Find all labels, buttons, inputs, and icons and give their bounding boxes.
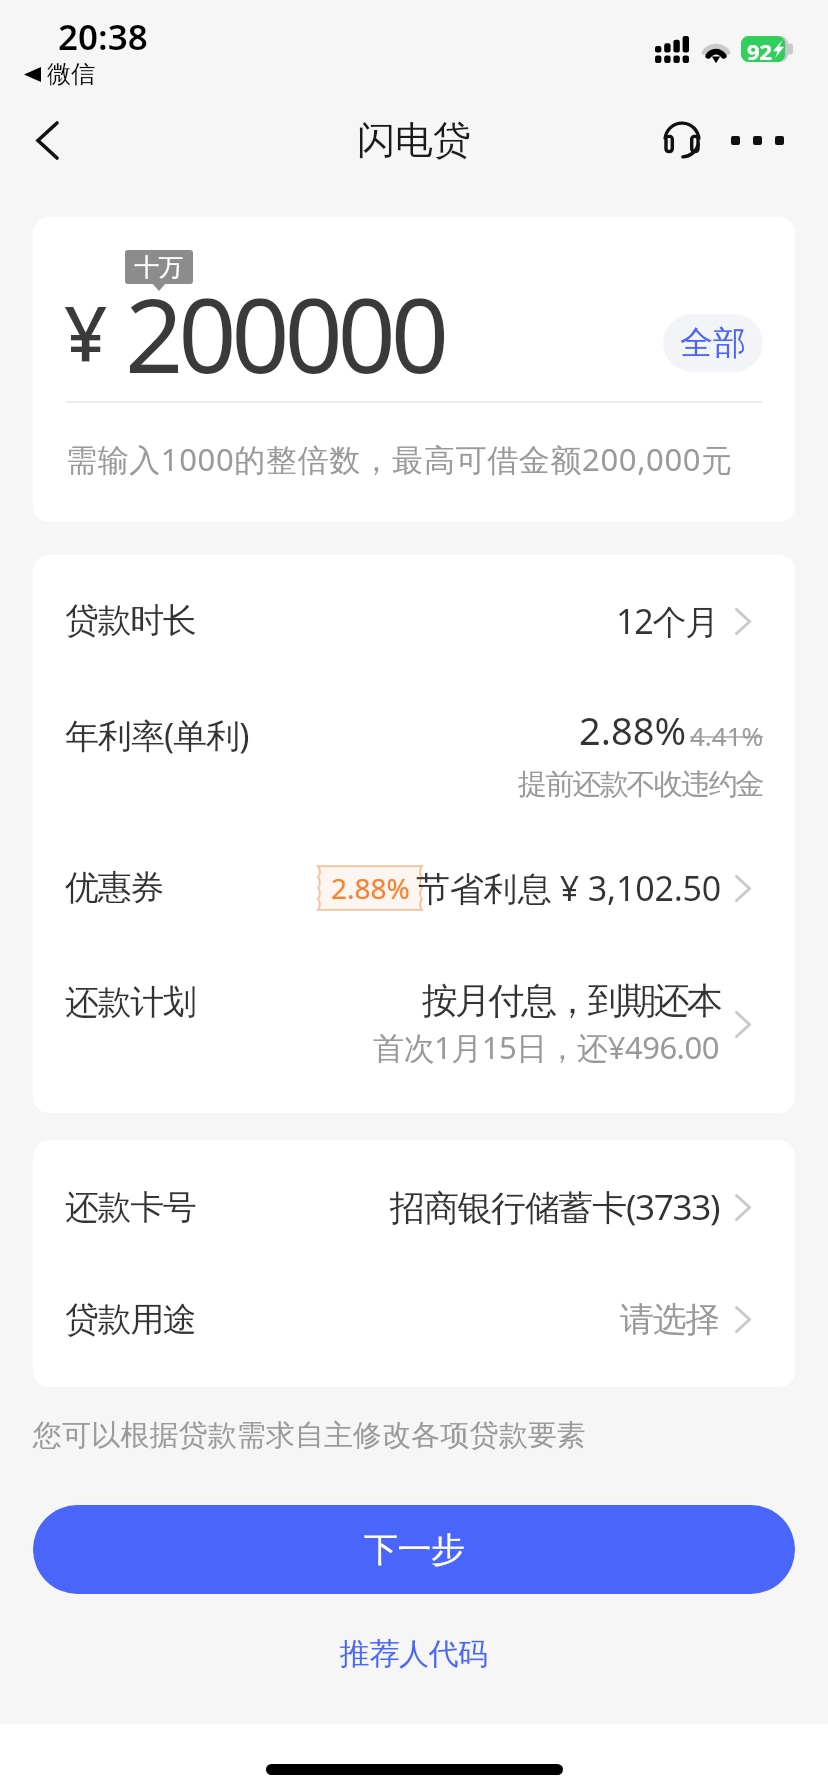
staticText: 20:38 — [58, 13, 148, 61]
staticText: 闪电贷 — [357, 116, 471, 164]
staticText: 年利率(单利) — [65, 712, 249, 758]
staticText: 12个月 — [616, 598, 719, 644]
staticText: 提前还款不收违约金 — [518, 766, 763, 803]
staticText: 全部 — [680, 322, 746, 364]
staticText: 2.88% — [579, 704, 686, 756]
staticText: 按月付息，到期还本 — [422, 978, 720, 1023]
staticText: 招商银行储蓄卡(3733) — [390, 1183, 720, 1231]
staticText: 贷款时长 — [65, 599, 196, 642]
staticText: 首次1月15日，还¥496.00 — [373, 1026, 719, 1068]
staticText: 还款计划 — [65, 981, 196, 1024]
button[interactable]: More options — [727, 110, 787, 170]
button[interactable]: 下一步 — [33, 1505, 795, 1594]
staticText: 十万 — [135, 252, 183, 283]
staticText: 推荐人代码 — [340, 1635, 488, 1673]
staticText: 200000 — [125, 264, 444, 403]
button[interactable]: Back — [13, 106, 82, 175]
staticText: 2.88% — [331, 869, 410, 907]
staticText: 优惠券 — [65, 866, 163, 909]
button[interactable]: 贷款时长 — [33, 566, 795, 676]
staticText: 4.41% — [690, 718, 764, 753]
staticText: ¥ — [64, 280, 108, 384]
staticText: 请选择 — [620, 1298, 719, 1341]
button[interactable]: 全部 — [663, 314, 763, 372]
staticText: 微信 — [47, 59, 95, 89]
button[interactable]: 贷款用途 — [33, 1263, 795, 1375]
staticText: 需输入1000的整倍数，最高可借金额200,000元 — [66, 438, 733, 480]
staticText: 您可以根据贷款需求自主修改各项贷款要素 — [33, 1417, 586, 1454]
button[interactable]: 优惠券 — [33, 832, 795, 944]
button[interactable]: 推荐人代码 — [314, 1624, 514, 1684]
button[interactable]: 还款卡号 — [33, 1151, 795, 1263]
button[interactable]: 还款计划 — [33, 944, 795, 1100]
staticText: 92 — [747, 36, 773, 62]
staticText: 下一步 — [364, 1528, 465, 1571]
button[interactable]: 年利率(单利) — [33, 676, 795, 832]
button[interactable]: Customer service — [652, 110, 712, 170]
staticText: 贷款用途 — [65, 1298, 196, 1341]
staticText: 还款卡号 — [65, 1186, 196, 1229]
staticText: 节省利息 ¥ 3,102.50 — [416, 865, 722, 911]
